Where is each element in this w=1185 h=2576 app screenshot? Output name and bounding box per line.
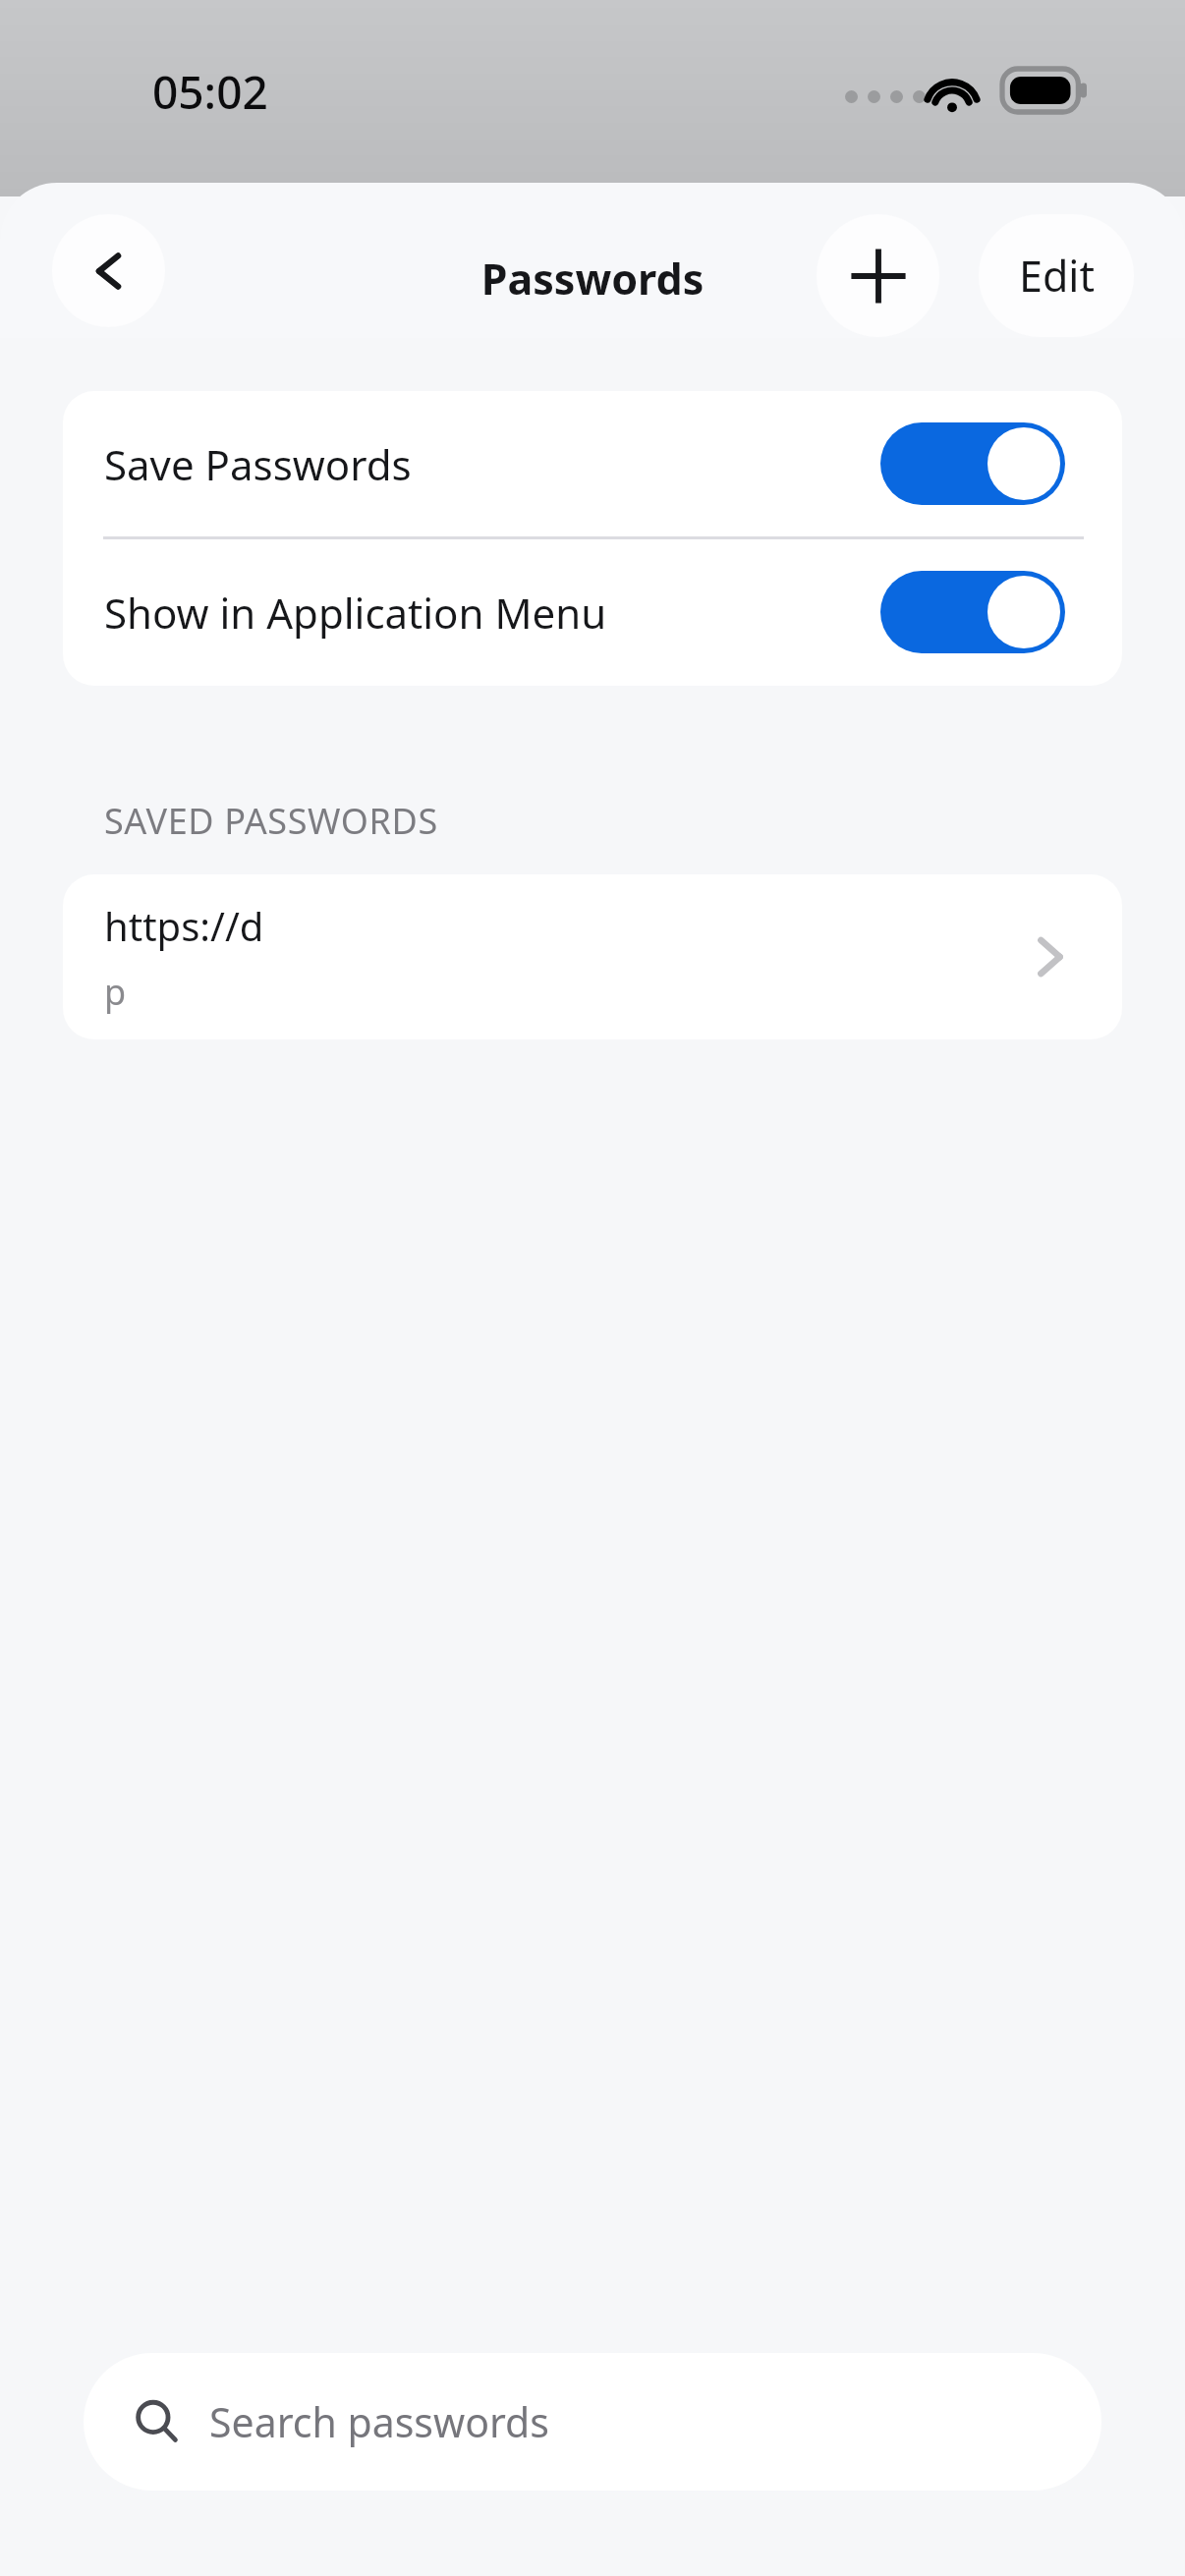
button[interactable]: Show in Application Menu [63,539,1122,685]
staticText: Passwords [0,250,1185,308]
staticText: Edit [1019,247,1095,305]
button[interactable]: https://d [63,874,1122,1039]
staticText: Search passwords [209,2394,549,2449]
staticText: Show in Application Menu [104,585,607,641]
staticText: SAVED PASSWORDS [104,797,438,845]
staticText: Save Passwords [104,436,412,492]
button[interactable]: Search passwords [84,2353,1101,2491]
button[interactable]: Save Passwords [63,391,1122,536]
button[interactable]: Show in Application Menu toggle [880,571,1065,653]
staticText: 05:02 [152,61,268,123]
staticText: p [104,968,127,1016]
button[interactable]: Add password [817,214,939,337]
button[interactable]: Save Passwords toggle [880,422,1065,505]
button[interactable]: Back [52,214,165,327]
button[interactable]: Edit [979,214,1134,337]
staticText: https://d [104,899,264,952]
